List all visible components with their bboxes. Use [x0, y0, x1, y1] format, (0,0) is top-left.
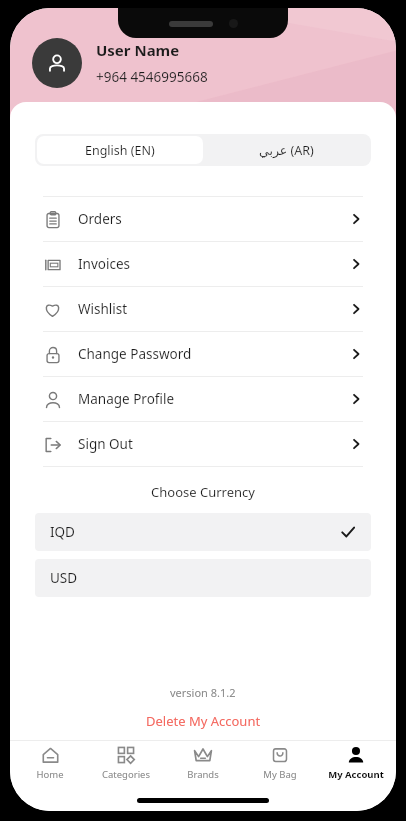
button[interactable]: Delete My Account: [138, 710, 269, 732]
staticText: Wishlist: [78, 300, 128, 318]
button[interactable]: Brands: [166, 745, 240, 781]
staticText: User Name: [96, 40, 180, 60]
button[interactable]: Categories: [89, 745, 163, 781]
staticText: عربي (AR): [259, 142, 314, 159]
staticText: Sign Out: [78, 435, 133, 453]
staticText: Manage Profile: [78, 390, 175, 408]
button[interactable]: IQD: [35, 513, 371, 551]
staticText: Categories: [102, 768, 150, 781]
staticText: USD: [50, 569, 78, 587]
staticText: IQD: [50, 523, 75, 541]
staticText: Orders: [78, 210, 122, 228]
staticText: Delete My Account: [146, 712, 261, 730]
button[interactable]: My Bag: [243, 745, 317, 781]
staticText: Change Password: [78, 345, 192, 363]
staticText: English (EN): [85, 142, 155, 159]
button[interactable]: USD: [35, 559, 371, 597]
staticText: version 8.1.2: [170, 685, 236, 700]
staticText: Invoices: [78, 255, 130, 273]
button[interactable]: My Account: [319, 745, 393, 781]
button[interactable]: Manage Profile: [10, 377, 396, 421]
button[interactable]: Change Password: [10, 332, 396, 376]
button[interactable]: عربي (AR): [203, 136, 369, 164]
staticText: My Bag: [263, 768, 297, 781]
button[interactable]: English (EN): [37, 136, 203, 164]
button[interactable]: Orders: [10, 197, 396, 241]
button[interactable]: Wishlist: [10, 287, 396, 331]
button[interactable]: Sign Out: [10, 422, 396, 466]
button[interactable]: Home: [13, 745, 87, 781]
staticText: Home: [36, 768, 64, 781]
button[interactable]: Invoices: [10, 242, 396, 286]
staticText: Choose Currency: [151, 483, 255, 501]
staticText: My Account: [328, 768, 384, 781]
staticText: Brands: [187, 768, 219, 781]
staticText: +964 4546995668: [96, 68, 208, 86]
